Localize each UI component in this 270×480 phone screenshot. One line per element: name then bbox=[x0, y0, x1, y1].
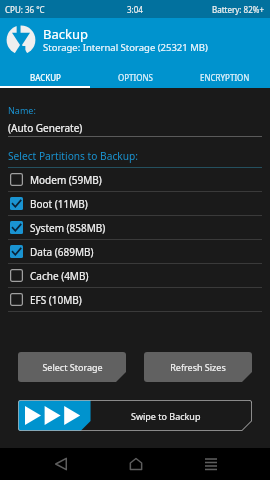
staticText: EFS (10MB) bbox=[30, 293, 82, 307]
staticText: ENCRYPTION bbox=[200, 72, 250, 83]
button[interactable]: Cache (4MB) bbox=[0, 264, 270, 288]
staticText: Battery: 82%+ bbox=[212, 4, 264, 15]
button[interactable]: Swipe to Backup bbox=[18, 400, 252, 431]
staticText: Storage: Internal Storage (25321 MB) bbox=[43, 41, 208, 54]
button[interactable]: Refresh Sizes bbox=[144, 352, 252, 382]
button[interactable]: EFS (10MB) bbox=[0, 288, 270, 312]
staticText: Select Storage bbox=[42, 361, 103, 373]
button[interactable]: System (858MB) bbox=[0, 216, 270, 240]
staticText: Select Partitions to Backup: bbox=[8, 149, 139, 163]
button[interactable]: Boot (11MB) bbox=[0, 192, 270, 216]
button[interactable]: Back bbox=[38, 448, 83, 480]
button[interactable]: Recent apps bbox=[188, 448, 233, 480]
staticText: Backup bbox=[43, 25, 88, 43]
button[interactable]: Data (689MB) bbox=[0, 240, 270, 264]
staticText: (Auto Generate) bbox=[8, 121, 83, 135]
staticText: Swipe to Backup bbox=[131, 410, 201, 422]
staticText: Modem (59MB) bbox=[30, 173, 102, 187]
staticText: 3:04 bbox=[127, 4, 143, 15]
staticText: BACKUP bbox=[30, 72, 61, 83]
button[interactable]: Select Storage bbox=[18, 352, 126, 382]
staticText: OPTIONS bbox=[118, 72, 153, 83]
button[interactable]: OPTIONS bbox=[90, 66, 180, 88]
staticText: CPU: 36 °C bbox=[5, 4, 45, 15]
staticText: Name: bbox=[8, 104, 36, 116]
staticText: Boot (11MB) bbox=[30, 197, 88, 211]
staticText: Cache (4MB) bbox=[30, 269, 89, 283]
button[interactable]: ENCRYPTION bbox=[180, 66, 270, 88]
staticText: Refresh Sizes bbox=[170, 361, 226, 373]
button[interactable]: BACKUP bbox=[0, 66, 90, 88]
staticText: System (858MB) bbox=[30, 221, 106, 235]
button[interactable]: Home bbox=[113, 448, 158, 480]
button[interactable]: Modem (59MB) bbox=[0, 168, 270, 192]
staticText: Data (689MB) bbox=[30, 245, 94, 259]
